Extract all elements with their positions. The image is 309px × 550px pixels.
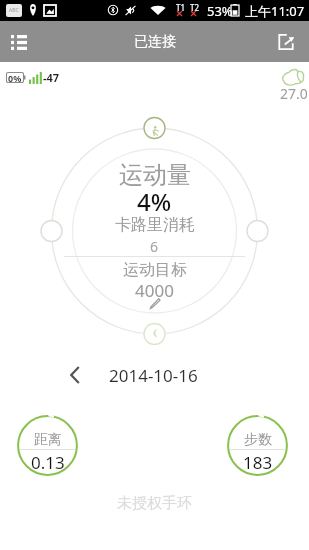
staticText: 183 [243, 451, 273, 474]
button[interactable]: Sleep [144, 322, 165, 343]
staticText: 6 [150, 237, 159, 256]
staticText: T1 [176, 2, 186, 13]
staticText: 上午11:07 [245, 2, 305, 20]
button[interactable]: Previous day [58, 362, 92, 388]
staticText: 未授权手环 [117, 494, 192, 513]
button[interactable]: Edit goal [149, 298, 160, 309]
button[interactable]: Menu [4, 27, 34, 57]
staticText: 27.0 [280, 84, 308, 103]
staticText: 距离 [34, 431, 62, 449]
staticText: 4% [137, 185, 172, 218]
button[interactable]: Share [271, 27, 301, 57]
staticText: 0.13 [31, 451, 65, 474]
staticText: 步数 [244, 431, 272, 449]
staticText: 2014-10-16 [109, 364, 198, 387]
staticText: 卡路里消耗 [115, 215, 195, 235]
staticText: 运动目标 [123, 260, 187, 280]
staticText: 运动量 [119, 160, 191, 190]
button[interactable]: 步数 [227, 415, 288, 476]
staticText: ABC [9, 7, 19, 14]
staticText: 0% [8, 72, 22, 83]
staticText: 已连接 [134, 33, 176, 51]
button[interactable]: Activity [144, 120, 165, 141]
staticText: T2 [190, 2, 200, 13]
staticText: 53% [207, 2, 233, 20]
button[interactable]: 距离 [17, 415, 78, 476]
staticText: 4000 [135, 279, 174, 302]
staticText: -47 [43, 70, 60, 85]
